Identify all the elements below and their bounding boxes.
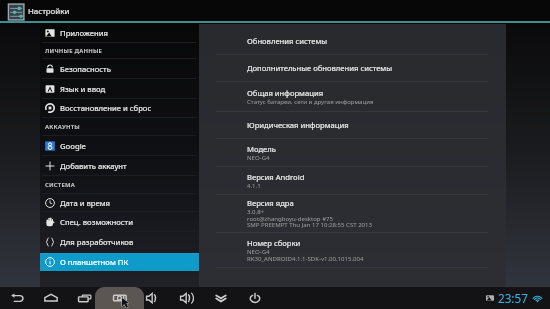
staticText: NEO-G4 RK30_ANDROID4.1.1-SDK-v1.00.1015.…: [247, 248, 364, 263]
staticText: Общая информация: [247, 88, 324, 98]
button[interactable]: Обновления системы: [216, 27, 488, 54]
button[interactable]: Восстановление и сброс: [40, 99, 199, 117]
staticText: Приложения: [60, 28, 108, 38]
button[interactable]: О планшетном ПК: [40, 253, 199, 271]
button[interactable]: Дата и время: [40, 194, 199, 211]
staticText: Номер сборки: [247, 238, 301, 248]
button[interactable]: Приложения: [40, 24, 199, 42]
button[interactable]: Общая информация: [216, 82, 488, 111]
button[interactable]: Номер сборки: [216, 233, 488, 267]
staticText: Для разработчиков: [60, 237, 134, 247]
staticText: Обновления системы: [247, 36, 328, 46]
button[interactable]: Back: [0, 287, 34, 309]
button[interactable]: Модель: [216, 139, 488, 166]
button[interactable]: Home: [34, 287, 68, 309]
staticText: О планшетном ПК: [60, 257, 129, 267]
staticText: Версия ядра: [247, 198, 294, 208]
staticText: Версия Android: [247, 172, 305, 182]
staticText: Модель: [247, 144, 276, 154]
button[interactable]: Screenshot: [95, 287, 144, 309]
staticText: 3.0.8+ root@zhangboyu-desktop #75 SMP PR…: [247, 208, 372, 229]
staticText: Google: [60, 141, 86, 151]
staticText: Дата и время: [60, 198, 111, 208]
button[interactable]: Для разработчиков: [40, 232, 199, 252]
staticText: АККАУНТЫ: [45, 123, 80, 131]
button[interactable]: Settings app: [7, 3, 25, 21]
staticText: СИСТЕМА: [45, 181, 75, 189]
staticText: 23:57: [498, 290, 528, 306]
staticText: Восстановление и сброс: [60, 103, 152, 113]
button[interactable]: Recent apps: [68, 287, 102, 309]
button[interactable]: Версия Android: [216, 167, 488, 194]
button[interactable]: Спец. возможности: [40, 212, 199, 231]
button[interactable]: Hide navigation bar: [204, 287, 238, 309]
staticText: NEO-G4: [247, 154, 270, 162]
button[interactable]: Дополнительные обновления системы: [216, 55, 488, 81]
button[interactable]: Volume down: [170, 287, 204, 309]
button[interactable]: Добавить аккаунт: [40, 156, 199, 175]
button[interactable]: Google: [40, 136, 199, 155]
staticText: Безопасность: [60, 64, 111, 74]
button[interactable]: Безопасность: [40, 59, 199, 78]
staticText: Язык и ввод: [60, 84, 106, 94]
staticText: Настройки: [28, 6, 70, 17]
button[interactable]: Volume up: [136, 287, 170, 309]
staticText: ЛИЧНЫЕ ДАННЫЕ: [45, 47, 103, 55]
button[interactable]: Версия ядра: [216, 195, 488, 232]
staticText: 4.1.1: [247, 182, 261, 190]
button[interactable]: Язык и ввод: [40, 79, 199, 98]
staticText: Юридическая информация: [247, 120, 349, 130]
staticText: Добавить аккаунт: [60, 161, 127, 171]
button[interactable]: Юридическая информация: [216, 112, 488, 138]
button[interactable]: Power: [238, 287, 272, 309]
staticText: Спец. возможности: [60, 217, 133, 227]
staticText: Дополнительные обновления системы: [247, 63, 393, 73]
staticText: Статус батареи, сети и другая информация: [247, 98, 374, 106]
